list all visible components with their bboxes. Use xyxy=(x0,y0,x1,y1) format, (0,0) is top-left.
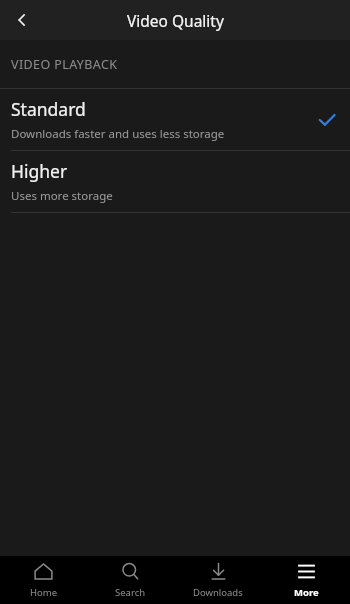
button[interactable]: Home xyxy=(0,556,87,604)
button[interactable]: Standard xyxy=(0,89,350,150)
staticText: Downloads xyxy=(193,586,243,599)
button[interactable]: Search xyxy=(87,556,174,604)
staticText: VIDEO PLAYBACK xyxy=(11,56,118,73)
staticText: Standard xyxy=(11,97,86,121)
button[interactable]: Higher xyxy=(0,151,350,212)
staticText: Video Quality xyxy=(127,10,224,31)
staticText: Uses more storage xyxy=(11,188,113,204)
button[interactable]: Back xyxy=(0,0,44,40)
button[interactable]: More xyxy=(262,556,350,604)
button[interactable]: Downloads xyxy=(174,556,262,604)
staticText: More xyxy=(294,586,319,599)
staticText: Higher xyxy=(11,159,68,183)
staticText: Home xyxy=(30,586,58,599)
staticText: Downloads faster and uses less storage xyxy=(11,126,225,142)
staticText: Search xyxy=(115,586,146,599)
